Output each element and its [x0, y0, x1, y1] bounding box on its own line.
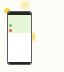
button[interactable]: Top app bar	[8, 12, 31, 15]
button[interactable]: Bottom navigation	[8, 62, 31, 64]
